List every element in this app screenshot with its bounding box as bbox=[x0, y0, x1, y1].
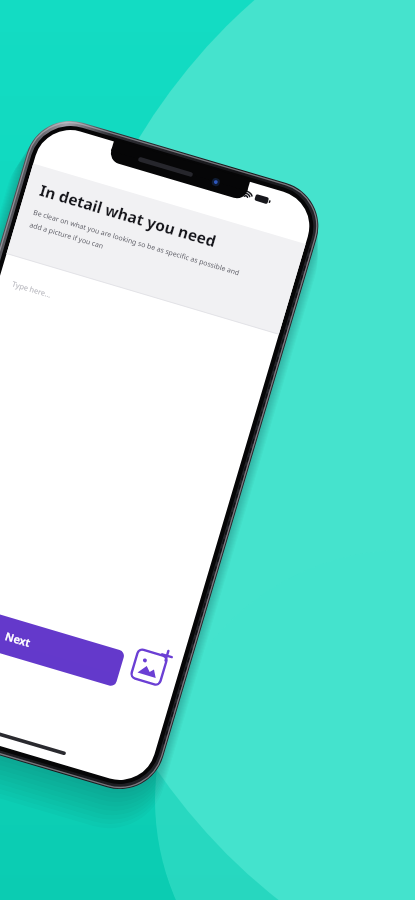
button[interactable]: Describe what you need promo screen bbox=[0, 0, 415, 900]
